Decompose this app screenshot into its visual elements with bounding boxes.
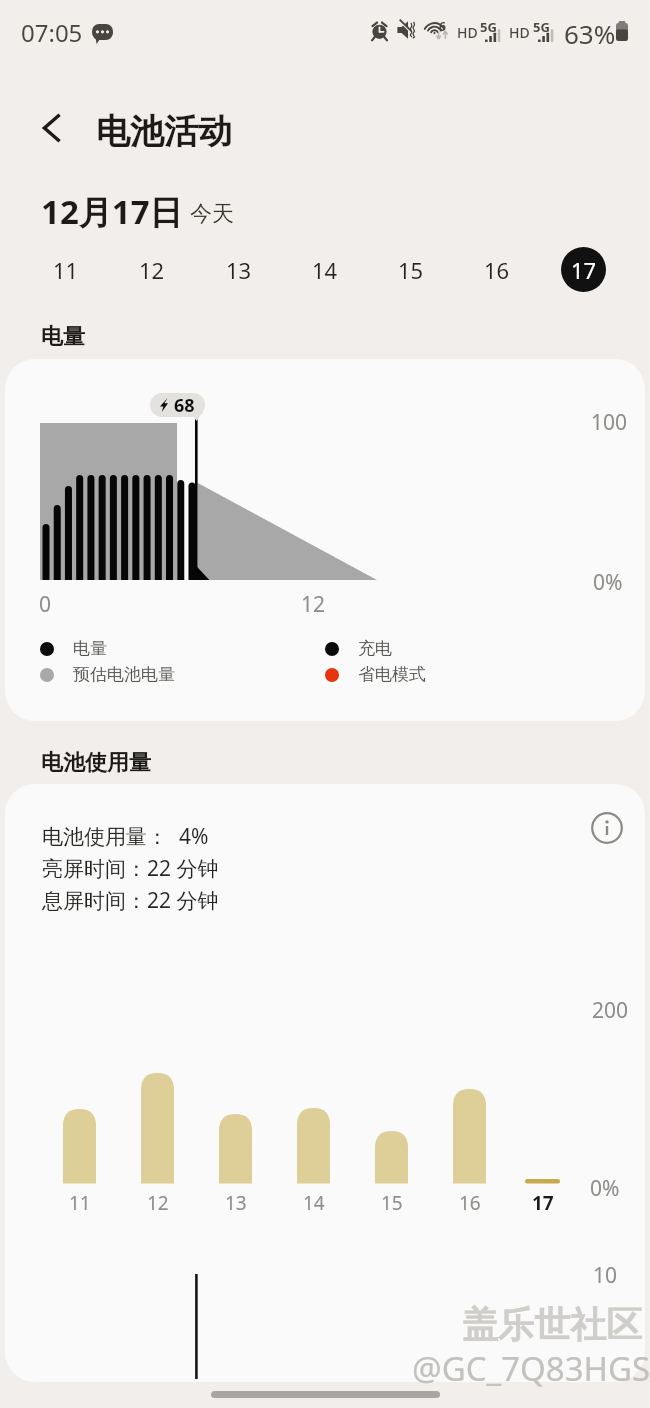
staticText: 11: [69, 1190, 91, 1216]
staticText: HD: [509, 23, 530, 42]
button[interactable]: 16: [474, 247, 519, 292]
staticText: 电池使用量： 4%: [42, 822, 209, 851]
staticText: 亮屏时间：22 分钟: [42, 854, 219, 883]
staticText: 17: [532, 1190, 554, 1216]
staticText: 12: [139, 255, 165, 285]
staticText: 预估电池电量: [73, 664, 175, 685]
staticText: 0: [39, 590, 52, 619]
staticText: 5G: [480, 18, 497, 36]
staticText: 63%: [564, 16, 616, 51]
staticText: 11: [53, 255, 79, 285]
staticText: 12: [147, 1190, 169, 1216]
staticText: 15: [381, 1190, 403, 1216]
staticText: 100: [591, 408, 628, 437]
staticText: 12月17日: [41, 189, 183, 234]
staticText: 电量: [73, 638, 107, 659]
staticText: 0%: [590, 1174, 620, 1203]
staticText: HD: [457, 23, 478, 42]
staticText: 充电: [358, 638, 392, 659]
button[interactable]: 12: [129, 247, 174, 292]
button[interactable]: Info: [582, 803, 632, 853]
staticText: 省电模式: [358, 664, 426, 685]
button[interactable]: 13: [216, 247, 261, 292]
button[interactable]: 15: [388, 247, 433, 292]
staticText: 今天: [190, 200, 234, 228]
button[interactable]: 14: [302, 247, 347, 292]
staticText: @GC_7Q83HGS: [412, 1346, 650, 1391]
staticText: 14: [312, 255, 338, 285]
staticText: 电池活动: [96, 110, 232, 153]
staticText: 13: [225, 1190, 247, 1216]
button[interactable]: 17: [561, 247, 606, 292]
staticText: 0%: [593, 568, 623, 597]
staticText: 5G: [533, 18, 550, 36]
staticText: 电池使用量: [41, 749, 151, 777]
staticText: 15: [398, 255, 424, 285]
staticText: 13: [226, 255, 252, 285]
staticText: 12: [301, 590, 326, 619]
staticText: 07:05: [21, 16, 83, 49]
staticText: 68: [174, 393, 195, 417]
button[interactable]: Back: [24, 104, 80, 152]
button[interactable]: 11: [43, 247, 88, 292]
staticText: 电量: [41, 323, 85, 351]
staticText: 6: [439, 18, 446, 34]
staticText: 14: [303, 1190, 325, 1216]
staticText: 200: [592, 996, 629, 1025]
staticText: 10: [593, 1261, 618, 1290]
staticText: 17: [571, 255, 597, 285]
staticText: 16: [484, 255, 510, 285]
staticText: 盖乐世社区: [462, 1302, 642, 1347]
staticText: 16: [459, 1190, 481, 1216]
staticText: 息屏时间：22 分钟: [42, 886, 219, 915]
